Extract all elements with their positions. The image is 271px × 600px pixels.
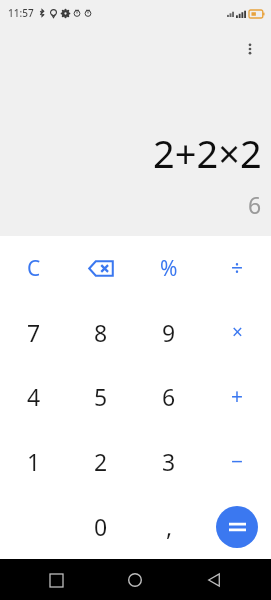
staticText: ÷ <box>231 254 244 283</box>
button[interactable]: 1 <box>0 429 67 494</box>
button[interactable]: Backspace <box>67 236 135 300</box>
button[interactable]: ÷ <box>203 236 271 300</box>
button[interactable]: 6 <box>135 364 203 429</box>
staticText: 1 <box>27 446 41 477</box>
staticText: , <box>166 511 173 542</box>
button[interactable]: × <box>203 300 271 364</box>
staticText: 3 <box>162 446 176 477</box>
button[interactable]: 8 <box>67 300 135 364</box>
button[interactable]: % <box>135 236 203 300</box>
button[interactable]: − <box>203 429 271 494</box>
button[interactable]: 9 <box>135 300 203 364</box>
button[interactable]: 0 <box>67 494 135 559</box>
button[interactable]: More options <box>235 34 265 64</box>
button[interactable]: Equals <box>216 506 258 548</box>
staticText: 2+2×2 <box>153 127 262 179</box>
button[interactable]: 2 <box>67 429 135 494</box>
staticText: 6 <box>248 189 262 220</box>
staticText: 0 <box>94 511 108 542</box>
button[interactable]: 4 <box>0 364 67 429</box>
staticText: × <box>232 319 243 345</box>
staticText: 4 <box>27 381 41 412</box>
button[interactable]: C <box>0 236 67 300</box>
staticText: + <box>231 382 244 411</box>
button[interactable]: Home <box>115 560 155 600</box>
button[interactable]: 3 <box>135 429 203 494</box>
staticText: 6 <box>162 381 176 412</box>
staticText: 5 <box>94 381 108 412</box>
button[interactable]: 5 <box>67 364 135 429</box>
button[interactable]: Recent apps <box>36 560 76 600</box>
button[interactable]: 7 <box>0 300 67 364</box>
staticText: 7 <box>27 317 41 348</box>
staticText: % <box>160 254 178 283</box>
staticText: 9 <box>162 317 176 348</box>
staticText: C <box>27 254 41 283</box>
staticText: 8 <box>94 317 108 348</box>
staticText: 11:57 <box>8 6 34 20</box>
button[interactable]: + <box>203 364 271 429</box>
button[interactable]: , <box>135 494 203 559</box>
button[interactable]: Back <box>194 560 234 600</box>
staticText: − <box>231 447 244 476</box>
staticText: 2 <box>94 446 108 477</box>
